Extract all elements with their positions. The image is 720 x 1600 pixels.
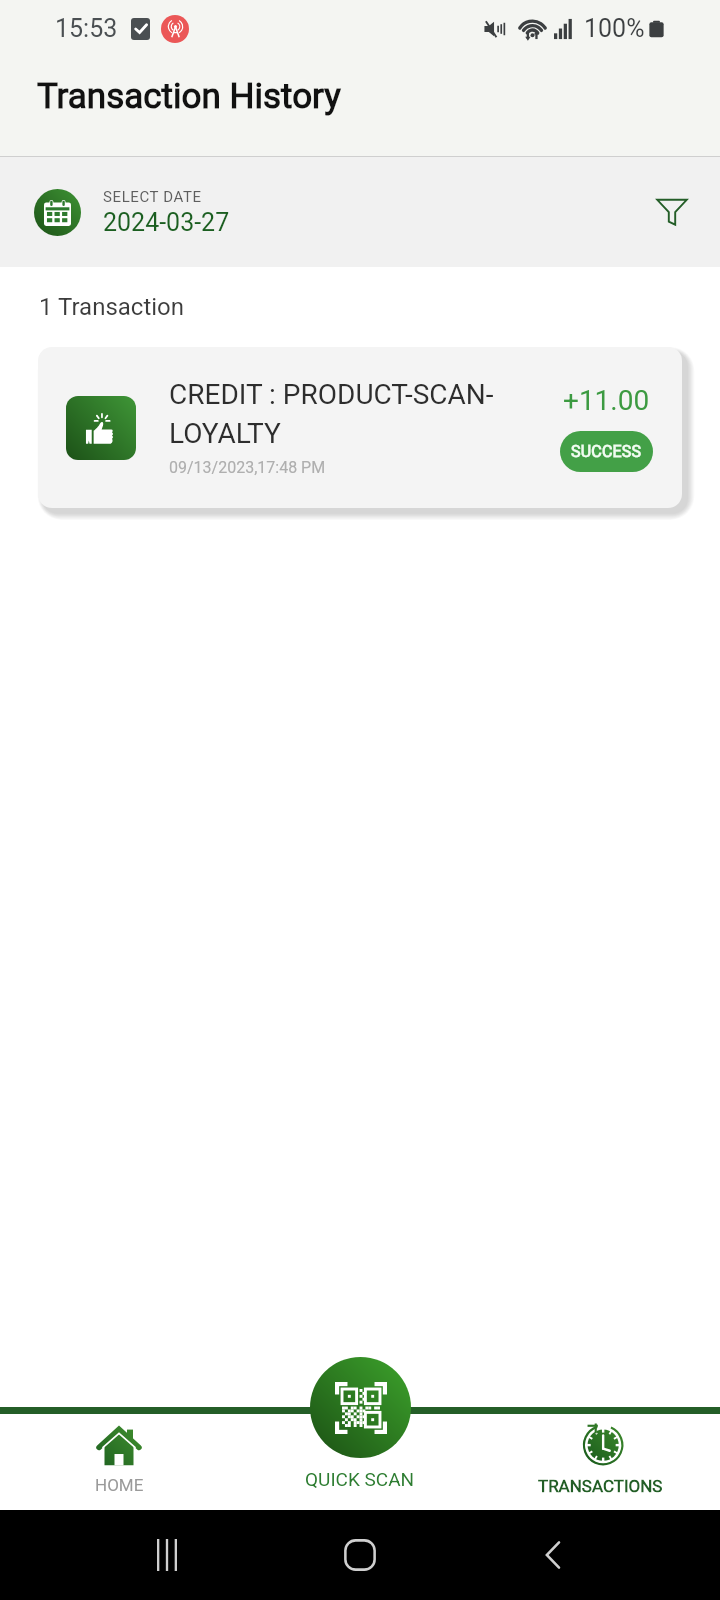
staticText: Transaction History bbox=[37, 76, 341, 117]
staticText: 15:53 bbox=[55, 14, 118, 43]
button[interactable]: SELECT DATE bbox=[0, 178, 240, 247]
button[interactable]: Quick Scan bbox=[305, 1357, 415, 1490]
button[interactable]: Home bbox=[333, 1528, 387, 1582]
button[interactable]: HOME bbox=[71, 1423, 167, 1501]
staticText: CREDIT : PRODUCT-SCAN-LOYALTY bbox=[169, 378, 556, 450]
button[interactable]: Recents bbox=[140, 1528, 194, 1582]
staticText: 100% bbox=[584, 14, 645, 43]
staticText: 1 Transaction bbox=[39, 293, 185, 321]
staticText: SELECT DATE bbox=[103, 188, 202, 206]
staticText: 2024-03-27 bbox=[103, 208, 230, 237]
button[interactable]: Filter bbox=[646, 184, 698, 236]
button[interactable]: Back bbox=[527, 1528, 581, 1582]
staticText: 09/13/2023,17:48 PM bbox=[169, 458, 326, 477]
staticText: TRANSACTIONS bbox=[538, 1476, 663, 1496]
staticText: +11.00 bbox=[563, 384, 650, 417]
staticText: QUICK SCAN bbox=[305, 1468, 415, 1490]
staticText: SUCCESS bbox=[571, 442, 642, 461]
button[interactable]: TRANSACTIONS bbox=[530, 1418, 670, 1498]
staticText: HOME bbox=[95, 1475, 144, 1495]
button[interactable]: CREDIT : PRODUCT-SCAN-LOYALTY bbox=[38, 347, 682, 508]
